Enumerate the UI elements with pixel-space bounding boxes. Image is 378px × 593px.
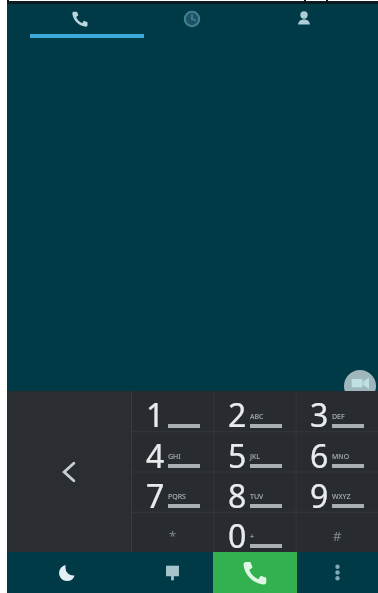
staticText: 2 <box>228 393 246 434</box>
button[interactable]: 7 <box>131 472 214 512</box>
button[interactable]: 0 <box>214 512 296 552</box>
button[interactable]: Keypad <box>24 4 136 34</box>
button[interactable]: # <box>296 512 378 552</box>
staticText: # <box>333 527 342 545</box>
staticText: 0 <box>228 514 246 554</box>
staticText: 4 <box>146 434 164 474</box>
staticText: 5 <box>228 434 246 474</box>
button[interactable]: Dialpad <box>125 552 213 593</box>
staticText: 6 <box>310 434 328 474</box>
staticText: 3 <box>310 393 328 434</box>
staticText: MNO <box>332 452 350 462</box>
staticText: + <box>250 532 255 542</box>
staticText: GHI <box>168 452 181 462</box>
button[interactable]: 3 <box>296 391 378 432</box>
staticText: TUV <box>250 492 264 502</box>
button[interactable]: * <box>131 512 214 552</box>
button[interactable]: 5 <box>214 432 296 472</box>
staticText: 1 <box>146 393 164 434</box>
button[interactable]: More options <box>297 552 378 593</box>
staticText: WXYZ <box>332 492 351 502</box>
button[interactable]: Recents <box>136 4 248 34</box>
staticText: 9 <box>310 474 328 514</box>
staticText: 8 <box>228 474 246 514</box>
button[interactable]: Video call <box>344 370 376 402</box>
staticText: DEF <box>332 412 345 422</box>
button[interactable]: Contacts <box>248 4 360 34</box>
button[interactable]: Backspace <box>7 391 131 552</box>
staticText: PQRS <box>168 492 186 502</box>
button[interactable]: 4 <box>131 432 214 472</box>
button[interactable]: 2 <box>214 391 296 432</box>
button[interactable]: Do not disturb <box>7 552 125 593</box>
staticText: 7 <box>146 474 164 514</box>
button[interactable]: Call <box>213 552 297 593</box>
button[interactable]: 1 <box>131 391 214 432</box>
staticText: * <box>169 527 177 545</box>
button[interactable]: 8 <box>214 472 296 512</box>
button[interactable]: 6 <box>296 432 378 472</box>
button[interactable]: 9 <box>296 472 378 512</box>
staticText: JKL <box>250 452 260 462</box>
staticText: ABC <box>250 412 264 422</box>
